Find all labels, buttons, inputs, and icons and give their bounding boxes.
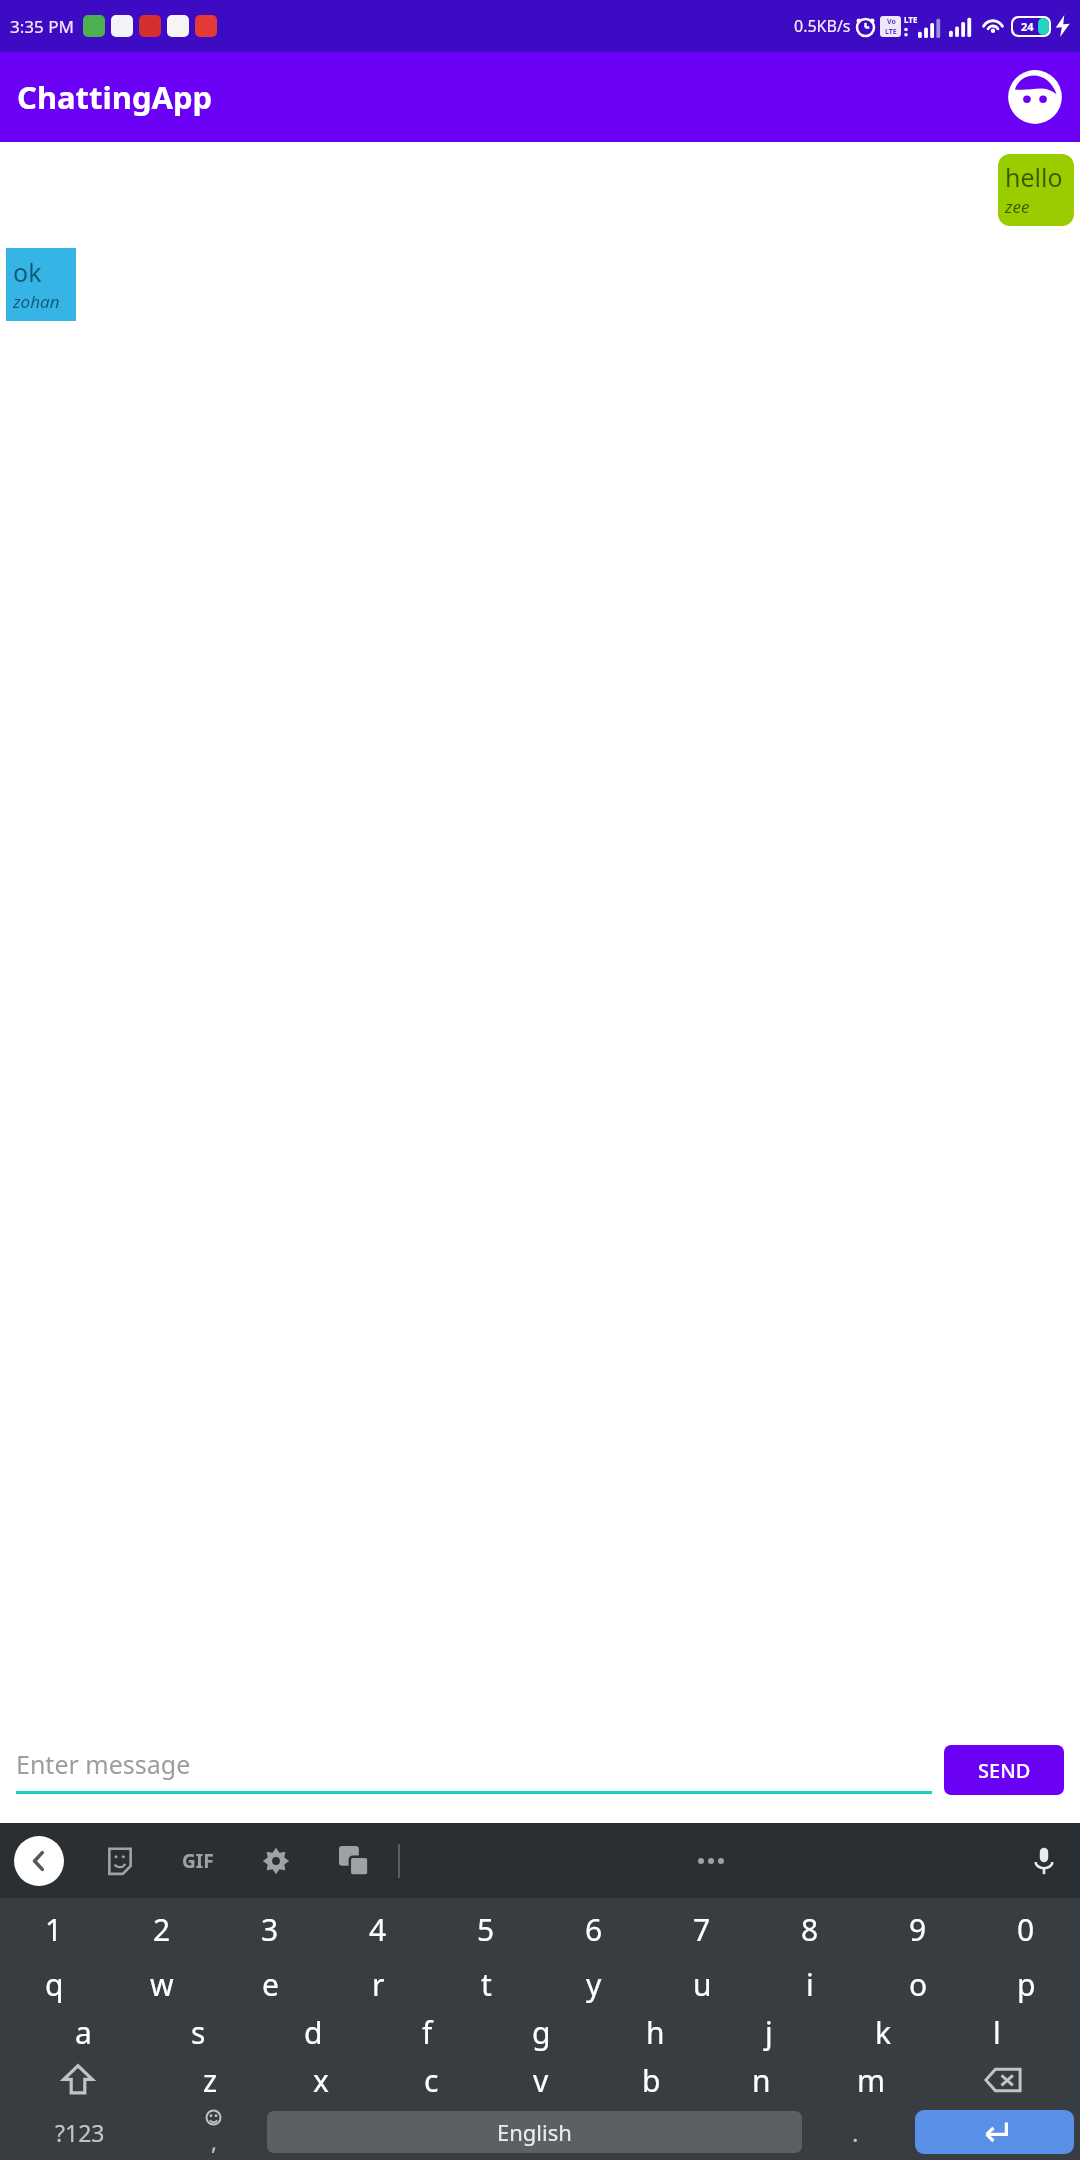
staticText: Vo: [887, 17, 896, 27]
button[interactable]: v: [486, 2056, 596, 2104]
staticText: 24: [1021, 19, 1034, 34]
staticText: GIF: [182, 1848, 214, 1874]
button[interactable]: 9: [864, 1898, 972, 1960]
staticText: 7: [693, 1909, 711, 1950]
staticText: ok: [13, 255, 42, 289]
button[interactable]: ok: [6, 248, 76, 321]
button[interactable]: l: [940, 2008, 1054, 2056]
staticText: a: [75, 2012, 92, 2053]
button[interactable]: hello: [998, 154, 1074, 226]
button[interactable]: Backspace: [926, 2056, 1080, 2104]
button[interactable]: a: [26, 2008, 141, 2056]
staticText: g: [532, 2012, 551, 2053]
staticText: 9: [909, 1909, 927, 1950]
button[interactable]: 4: [324, 1898, 432, 1960]
staticText: SEND: [978, 1757, 1031, 1784]
button[interactable]: Enter message: [16, 1747, 932, 1794]
staticText: 3:35 PM: [10, 15, 74, 38]
button[interactable]: .: [802, 2104, 909, 2160]
staticText: u: [693, 1964, 712, 2005]
button[interactable]: Shift: [0, 2056, 155, 2104]
button[interactable]: 6: [540, 1898, 648, 1960]
button[interactable]: z: [155, 2056, 266, 2104]
staticText: zohan: [13, 290, 60, 313]
staticText: LTE: [885, 27, 897, 37]
staticText: c: [424, 2060, 439, 2101]
staticText: t: [481, 1964, 492, 2005]
button[interactable]: c: [376, 2056, 486, 2104]
staticText: f: [422, 2012, 433, 2053]
button[interactable]: 3: [216, 1898, 324, 1960]
button[interactable]: g: [484, 2008, 598, 2056]
staticText: k: [875, 2012, 892, 2053]
button[interactable]: Translate: [332, 1839, 376, 1883]
staticText: zee: [1005, 195, 1030, 218]
button[interactable]: u: [648, 1960, 756, 2008]
staticText: 8: [801, 1909, 819, 1950]
button[interactable]: j: [712, 2008, 826, 2056]
button[interactable]: 1: [0, 1898, 108, 1960]
button[interactable]: o: [864, 1960, 972, 2008]
staticText: ChattingApp: [17, 76, 213, 118]
staticText: y: [586, 1964, 602, 2005]
staticText: hello: [1005, 160, 1063, 194]
staticText: p: [1017, 1964, 1036, 2005]
staticText: w: [150, 1964, 174, 2005]
staticText: q: [45, 1964, 64, 2005]
staticText: 5: [477, 1909, 495, 1950]
button[interactable]: English: [267, 2111, 802, 2153]
button[interactable]: b: [596, 2056, 706, 2104]
button[interactable]: 5: [432, 1898, 540, 1960]
button[interactable]: m: [816, 2056, 926, 2104]
button[interactable]: i: [756, 1960, 864, 2008]
button[interactable]: Stickers: [98, 1839, 142, 1883]
button[interactable]: f: [370, 2008, 484, 2056]
button[interactable]: More options: [689, 1839, 733, 1883]
button[interactable]: Enter: [915, 2110, 1074, 2154]
staticText: 2: [153, 1909, 171, 1950]
staticText: 3: [261, 1909, 279, 1950]
button[interactable]: n: [706, 2056, 816, 2104]
staticText: 1: [45, 1909, 63, 1950]
staticText: m: [857, 2060, 886, 2101]
button[interactable]: s: [141, 2008, 256, 2056]
button[interactable]: w: [108, 1960, 216, 2008]
button[interactable]: p: [972, 1960, 1080, 2008]
staticText: 0.5KB/s: [794, 15, 851, 37]
button[interactable]: t: [432, 1960, 540, 2008]
staticText: 0: [1017, 1909, 1035, 1950]
staticText: s: [191, 2012, 206, 2053]
staticText: English: [497, 2117, 572, 2147]
staticText: v: [533, 2060, 549, 2101]
button[interactable]: Settings: [254, 1839, 298, 1883]
button[interactable]: Back: [14, 1836, 64, 1886]
button[interactable]: Emoji and comma: [160, 2104, 267, 2160]
button[interactable]: 0: [972, 1898, 1080, 1960]
staticText: LTE: [904, 14, 918, 25]
button[interactable]: SEND: [944, 1745, 1064, 1795]
button[interactable]: r: [324, 1960, 432, 2008]
staticText: d: [304, 2012, 323, 2053]
staticText: 6: [585, 1909, 603, 1950]
button[interactable]: ?123: [0, 2104, 160, 2160]
staticText: j: [765, 2012, 773, 2053]
button[interactable]: e: [216, 1960, 324, 2008]
button[interactable]: h: [598, 2008, 712, 2056]
button[interactable]: Profile: [1007, 69, 1063, 125]
staticText: r: [372, 1964, 385, 2005]
button[interactable]: 2: [108, 1898, 216, 1960]
staticText: l: [993, 2012, 1001, 2053]
staticText: i: [806, 1964, 814, 2005]
button[interactable]: y: [540, 1960, 648, 2008]
button[interactable]: x: [266, 2056, 376, 2104]
button[interactable]: 7: [648, 1898, 756, 1960]
staticText: 4: [369, 1909, 387, 1950]
button[interactable]: 8: [756, 1898, 864, 1960]
staticText: Enter message: [16, 1747, 191, 1781]
staticText: h: [646, 2012, 665, 2053]
button[interactable]: d: [256, 2008, 370, 2056]
button[interactable]: Voice input: [1022, 1839, 1066, 1883]
button[interactable]: k: [826, 2008, 940, 2056]
button[interactable]: GIF: [176, 1839, 220, 1883]
button[interactable]: q: [0, 1960, 108, 2008]
